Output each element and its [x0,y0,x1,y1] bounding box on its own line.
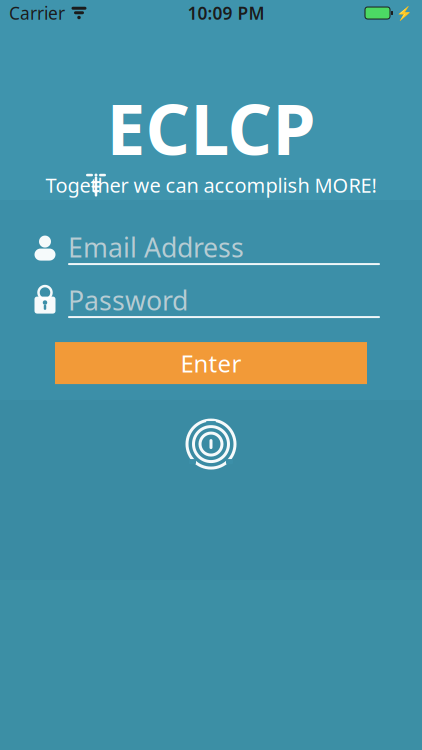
staticText: Carrier [9,1,65,24]
button[interactable]: Password [0,281,422,321]
button[interactable]: Sign in with Touch ID [179,412,243,476]
staticText: ⚡ [396,5,413,21]
staticText: Together we can accomplish MORE! [45,172,376,198]
staticText: Email Address [68,229,244,265]
staticText: Password [68,282,188,318]
staticText: 10:09 PM [187,1,264,24]
button[interactable]: Enter [55,342,367,384]
staticText: ECLCP [106,82,315,174]
button[interactable]: Email Address [0,228,422,268]
staticText: Enter [180,347,241,379]
